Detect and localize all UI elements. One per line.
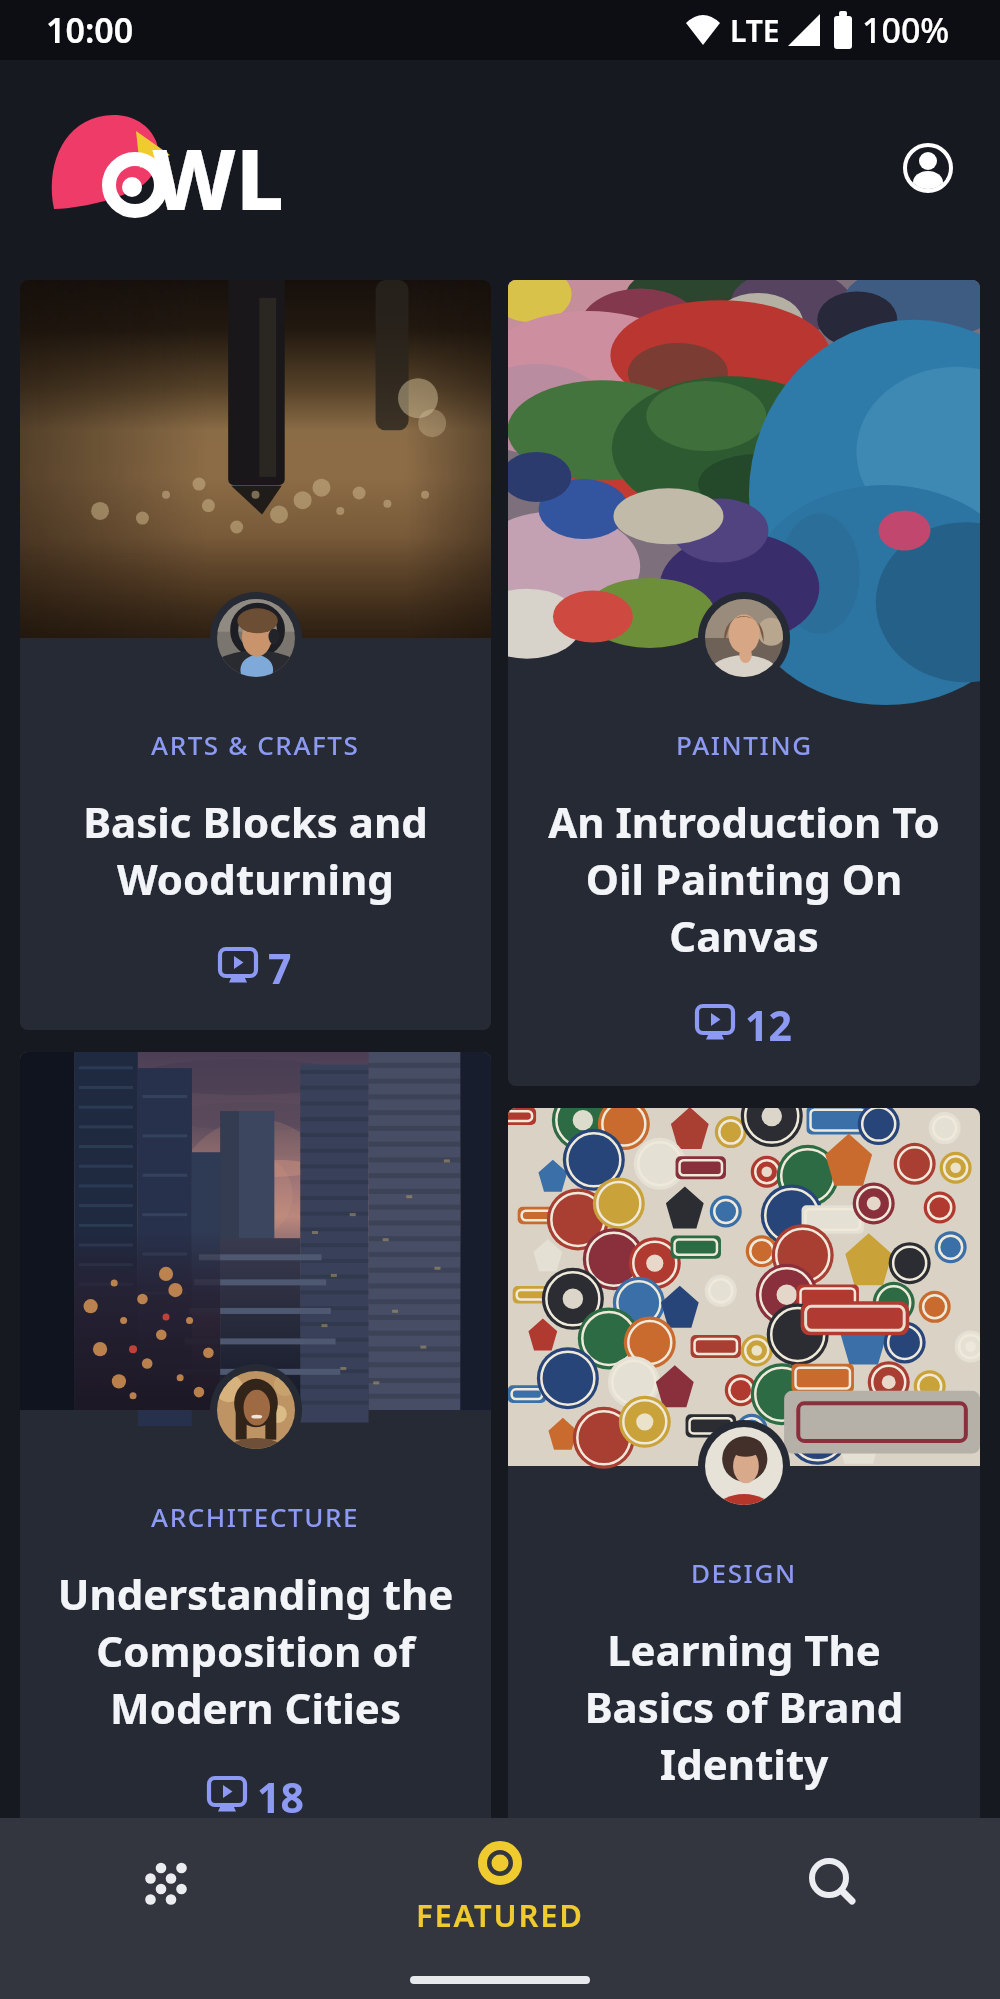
staticText: FEATURED	[416, 1894, 584, 1936]
staticText: An Introduction To Oil Painting On Canva…	[508, 793, 980, 964]
staticText: 18	[257, 1769, 304, 1817]
staticText: 7	[268, 940, 292, 988]
staticText: Learning The Basics of Brand Identity	[508, 1621, 980, 1792]
button[interactable]: PAINTING	[508, 280, 980, 1086]
staticText: WL	[152, 120, 284, 234]
staticText: ARTS & CRAFTS	[151, 727, 360, 762]
button[interactable]	[900, 140, 956, 196]
button[interactable]: ARCHITECTURE	[20, 1052, 491, 1858]
staticText: LTE	[730, 10, 780, 51]
button[interactable]: FEATURED	[416, 1840, 584, 1936]
staticText: PAINTING	[676, 727, 813, 762]
staticText: ARCHITECTURE	[151, 1499, 360, 1534]
button[interactable]	[126, 1844, 206, 1924]
staticText: Understanding the Composition of Modern …	[20, 1565, 491, 1736]
staticText: Basic Blocks and Woodturning	[20, 793, 491, 907]
staticText: DESIGN	[691, 1555, 797, 1590]
button[interactable]: ARTS & CRAFTS	[20, 280, 491, 1030]
button[interactable]: DESIGN	[508, 1108, 980, 1914]
button[interactable]	[792, 1843, 872, 1923]
staticText: 10:00	[46, 7, 134, 53]
staticText: 100%	[862, 7, 950, 53]
staticText: 12	[745, 997, 792, 1045]
